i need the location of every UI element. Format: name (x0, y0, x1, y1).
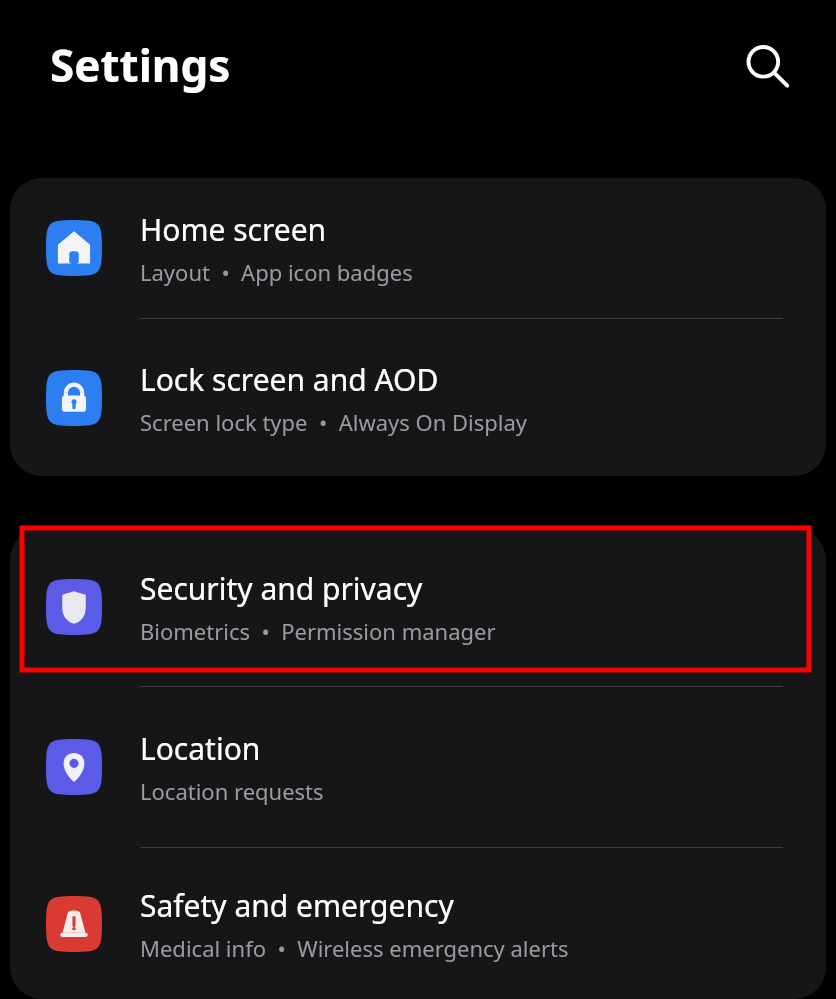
button[interactable]: Safety and emergency (10, 848, 826, 999)
other: Lock screen and AOD (46, 370, 102, 426)
other: Security and privacy (46, 579, 102, 635)
other: Location (46, 739, 102, 795)
button[interactable]: Lock screen and AOD (10, 319, 826, 476)
button[interactable]: Home screen (10, 178, 826, 318)
button[interactable]: Search (742, 41, 794, 93)
staticText: Settings (50, 35, 231, 95)
staticText: Home screen (140, 209, 327, 250)
button[interactable]: Security and privacy (10, 528, 826, 686)
staticText: Security and privacy (140, 568, 423, 609)
staticText: Lock screen and AOD (140, 359, 439, 400)
staticText: Layout • App icon badges (140, 257, 413, 287)
staticText: Medical info • Wireless emergency alerts (140, 933, 569, 963)
other: Safety and emergency (46, 896, 102, 952)
button[interactable]: Location (10, 687, 826, 847)
staticText: Location (140, 728, 261, 769)
staticText: Location requests (140, 776, 324, 806)
other: Home screen (46, 220, 102, 276)
staticText: Safety and emergency (140, 885, 454, 926)
staticText: Biometrics • Permission manager (140, 616, 496, 646)
staticText: Screen lock type • Always On Display (140, 407, 528, 437)
